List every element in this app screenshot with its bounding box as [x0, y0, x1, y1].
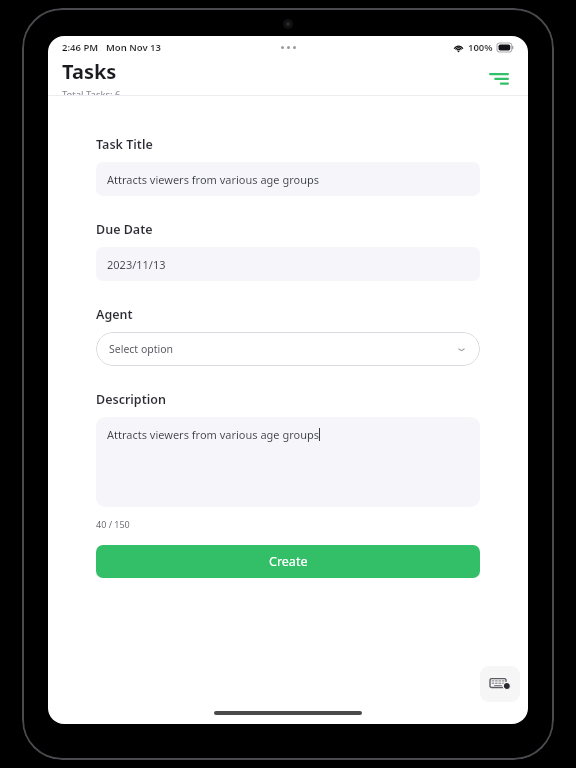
staticText: Create [269, 553, 308, 570]
button[interactable]: Select option [96, 332, 480, 366]
staticText: 40 / 150 [96, 518, 130, 530]
button[interactable]: Attracts viewers from various age groups [96, 417, 480, 507]
staticText: 2:46 PM [62, 41, 99, 54]
staticText: 100% [468, 41, 493, 54]
staticText: Task Title [96, 136, 153, 153]
button[interactable]: Attracts viewers from various age groups [96, 162, 480, 196]
staticText: Attracts viewers from various age groups [107, 427, 319, 442]
staticText: Select option [109, 342, 174, 356]
button[interactable]: Dismiss keyboard [480, 666, 520, 702]
staticText: Due Date [96, 221, 153, 238]
button[interactable]: Create [96, 545, 480, 578]
staticText: Agent [96, 306, 133, 323]
staticText: Description [96, 391, 166, 408]
staticText: Total Tasks: 6 [62, 88, 121, 95]
staticText: 2023/11/13 [107, 257, 166, 272]
button[interactable]: Menu [484, 64, 514, 94]
staticText: Attracts viewers from various age groups [107, 172, 319, 187]
staticText: Tasks [62, 58, 117, 85]
button[interactable]: 2023/11/13 [96, 247, 480, 281]
staticText: Mon Nov 13 [106, 41, 161, 54]
